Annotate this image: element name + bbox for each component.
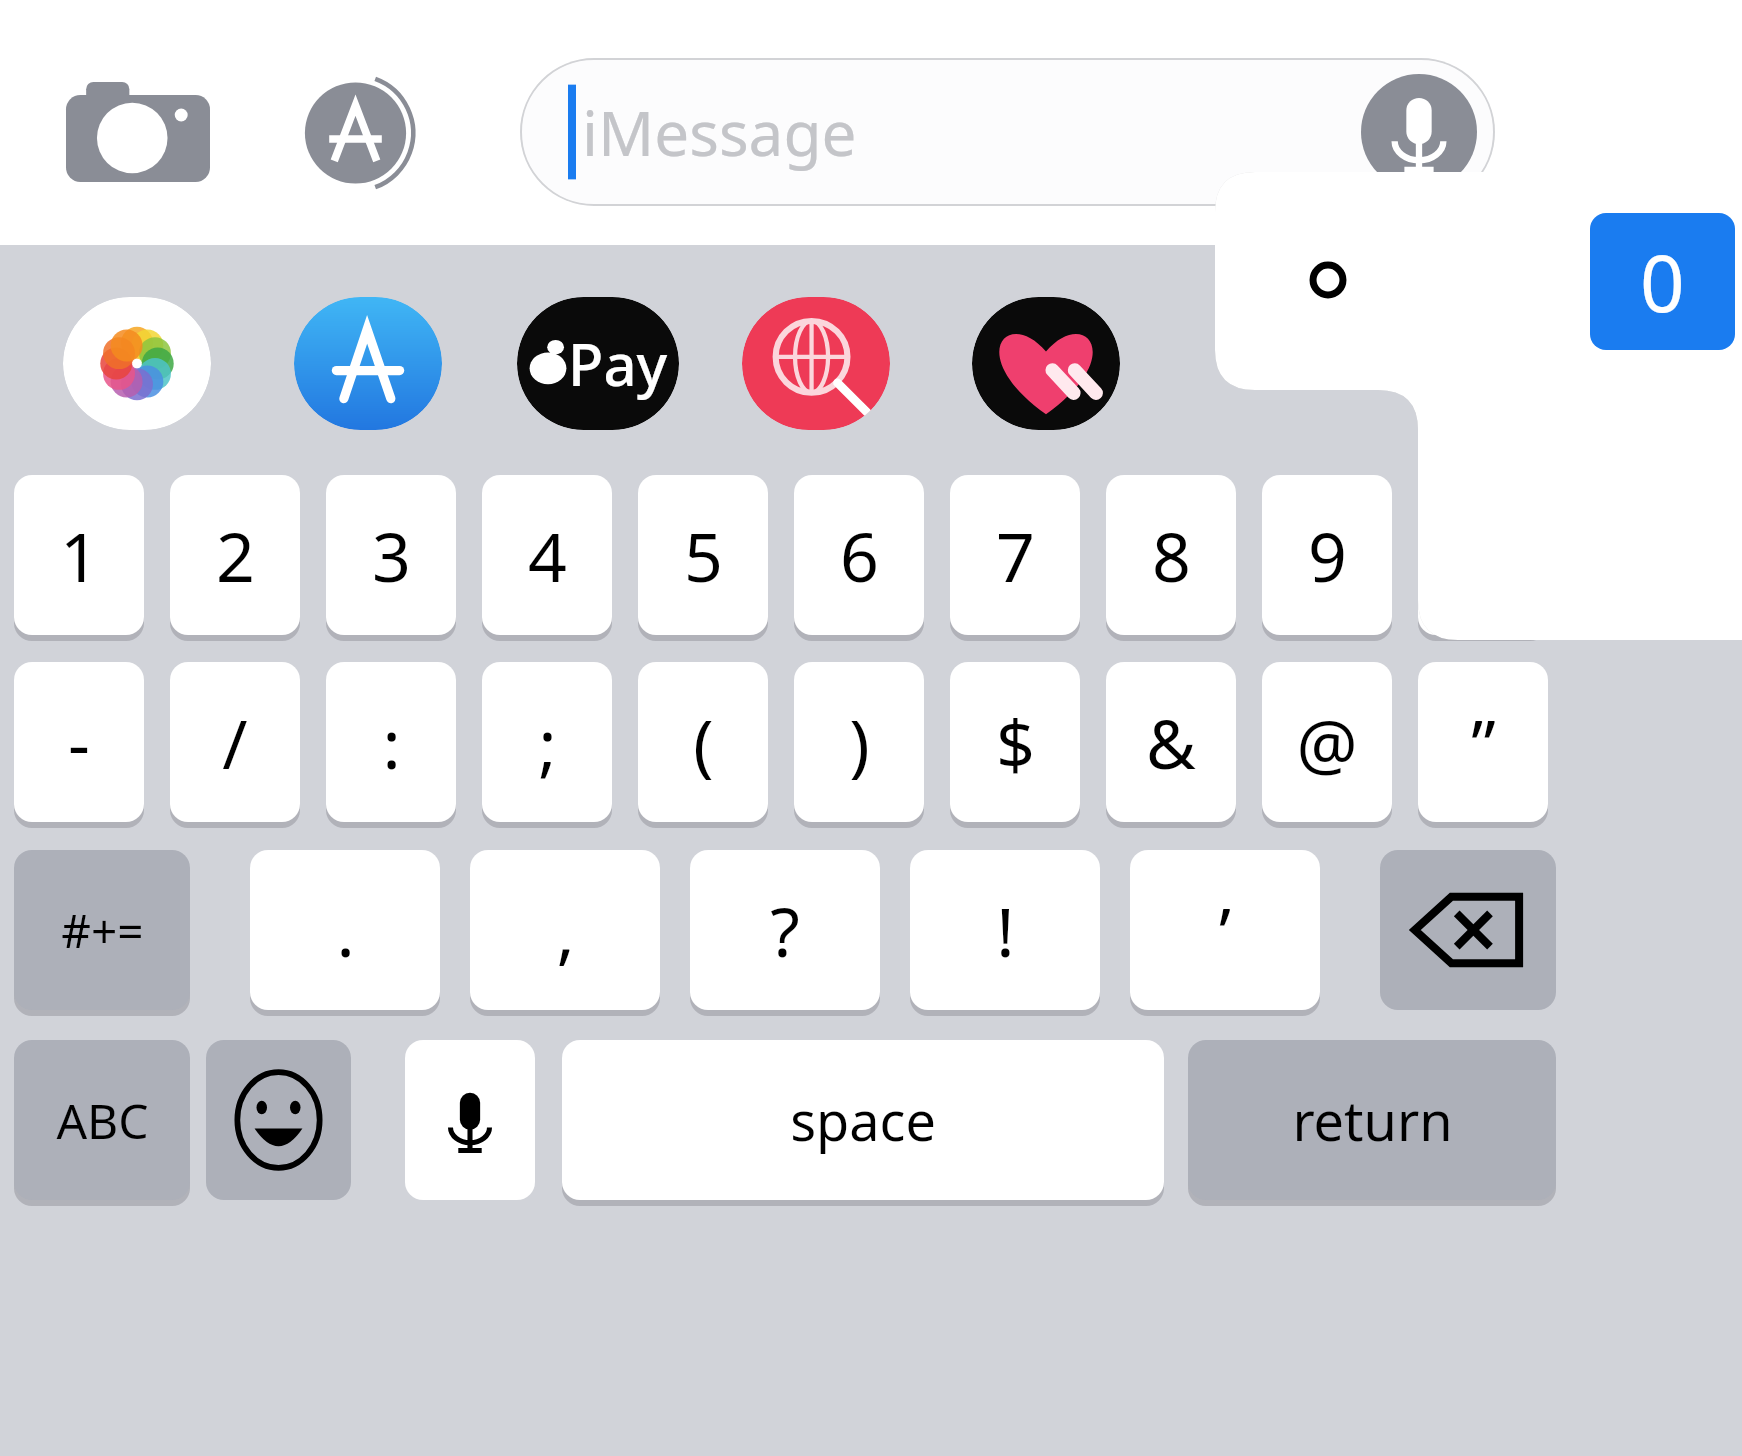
- staticText: ?: [770, 884, 800, 977]
- button[interactable]: @: [1262, 662, 1392, 822]
- staticText: space: [790, 1083, 936, 1157]
- button[interactable]: Apple Pay: [517, 297, 679, 430]
- button[interactable]: 0: [1590, 213, 1735, 350]
- button[interactable]: ?: [690, 850, 880, 1010]
- button[interactable]: 1: [14, 475, 144, 635]
- button[interactable]: iMessage: [520, 58, 1495, 206]
- button[interactable]: 4: [482, 475, 612, 635]
- button[interactable]: Emoji: [206, 1040, 351, 1200]
- staticText: Pay: [568, 324, 668, 403]
- staticText: 4: [528, 509, 567, 602]
- button[interactable]: Dictate: [1361, 74, 1477, 190]
- button[interactable]: 2: [170, 475, 300, 635]
- button[interactable]: .: [250, 850, 440, 1010]
- staticText: ’: [1219, 884, 1231, 977]
- button[interactable]: ;: [482, 662, 612, 822]
- button[interactable]: $: [950, 662, 1080, 822]
- button[interactable]: 5: [638, 475, 768, 635]
- staticText: 3: [372, 509, 411, 602]
- button[interactable]: 3: [326, 475, 456, 635]
- button[interactable]: ABC: [14, 1040, 190, 1200]
- button[interactable]: -: [14, 662, 144, 822]
- button[interactable]: #+=: [14, 850, 190, 1010]
- button[interactable]: ,: [470, 850, 660, 1010]
- button[interactable]: &: [1106, 662, 1236, 822]
- staticText: .: [336, 884, 355, 977]
- button[interactable]: Backspace: [1380, 850, 1556, 1010]
- staticText: #+=: [61, 899, 144, 962]
- button[interactable]: Camera: [66, 82, 210, 182]
- staticText: (: [693, 696, 714, 789]
- staticText: @: [1296, 696, 1358, 789]
- button[interactable]: ’: [1130, 850, 1320, 1010]
- staticText: 2: [216, 509, 255, 602]
- staticText: 7: [996, 509, 1035, 602]
- staticText: ABC: [56, 1088, 149, 1153]
- staticText: &: [1146, 696, 1196, 789]
- staticText: ;: [538, 696, 557, 789]
- button[interactable]: Health: [972, 297, 1120, 430]
- staticText: return: [1292, 1083, 1453, 1157]
- button[interactable]: [1245, 195, 1410, 365]
- button[interactable]: Dictation: [405, 1040, 535, 1200]
- staticText: ,: [556, 884, 575, 977]
- staticText: iMessage: [582, 90, 857, 174]
- button[interactable]: 9: [1262, 475, 1392, 635]
- staticText: 0: [1640, 229, 1685, 335]
- button[interactable]: Apps: [288, 78, 438, 188]
- staticText: 9: [1308, 509, 1347, 602]
- button[interactable]: /: [170, 662, 300, 822]
- staticText: $: [996, 696, 1035, 789]
- staticText: 6: [840, 509, 879, 602]
- button[interactable]: Photos: [63, 297, 211, 430]
- button[interactable]: space: [562, 1040, 1164, 1200]
- staticText: ”: [1471, 696, 1496, 789]
- button[interactable]: :: [326, 662, 456, 822]
- button[interactable]: 6: [794, 475, 924, 635]
- staticText: /: [222, 696, 248, 789]
- staticText: 5: [684, 509, 723, 602]
- button[interactable]: return: [1188, 1040, 1556, 1200]
- staticText: 8: [1152, 509, 1191, 602]
- button[interactable]: ): [794, 662, 924, 822]
- button[interactable]: App Store: [294, 297, 442, 430]
- button[interactable]: 8: [1106, 475, 1236, 635]
- button[interactable]: (: [638, 662, 768, 822]
- button[interactable]: ”: [1418, 662, 1548, 822]
- button[interactable]: Search: [742, 297, 890, 430]
- button[interactable]: 0: [1418, 475, 1548, 635]
- staticText: ): [849, 696, 870, 789]
- staticText: -: [68, 696, 90, 789]
- staticText: :: [382, 696, 401, 789]
- staticText: !: [996, 884, 1015, 977]
- button[interactable]: 7: [950, 475, 1080, 635]
- button[interactable]: !: [910, 850, 1100, 1010]
- staticText: 1: [60, 509, 99, 602]
